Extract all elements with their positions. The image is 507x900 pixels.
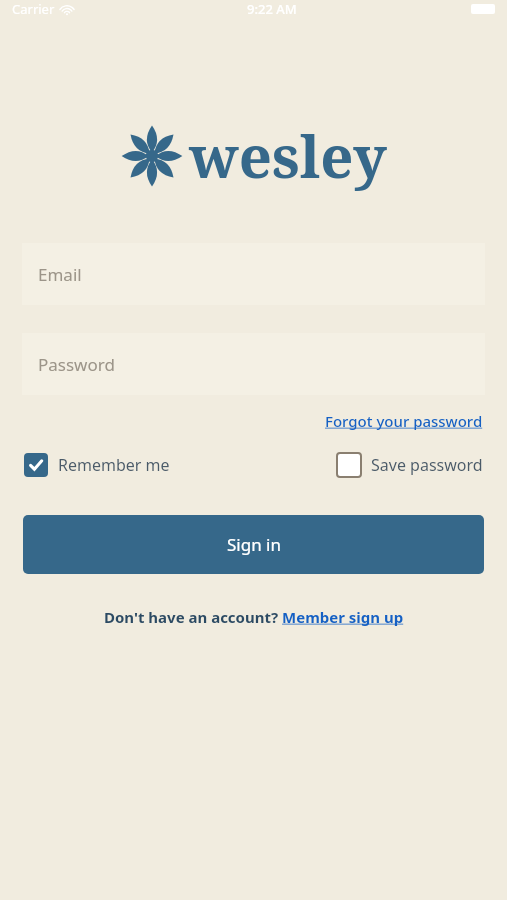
button[interactable]: Sign in [23,515,484,574]
staticText: Don't have an account? Member sign up [104,607,404,627]
button[interactable]: Email [22,243,485,305]
staticText: Carrier [12,0,55,18]
button[interactable]: Remember me [24,449,170,481]
staticText: 9:22 AM [247,0,297,18]
button[interactable]: Forgot your password [325,409,483,433]
staticText: Password [38,353,115,376]
staticText: wesley [189,116,387,195]
button[interactable]: Save password [337,449,483,481]
staticText: Sign in [227,533,281,556]
staticText: Remember me [58,454,170,476]
button[interactable]: Don't have an account? Member sign up [102,605,406,629]
staticText: Forgot your password [325,411,483,431]
staticText: Save password [371,454,483,476]
staticText: Email [38,263,82,286]
button[interactable]: Password [22,333,485,395]
